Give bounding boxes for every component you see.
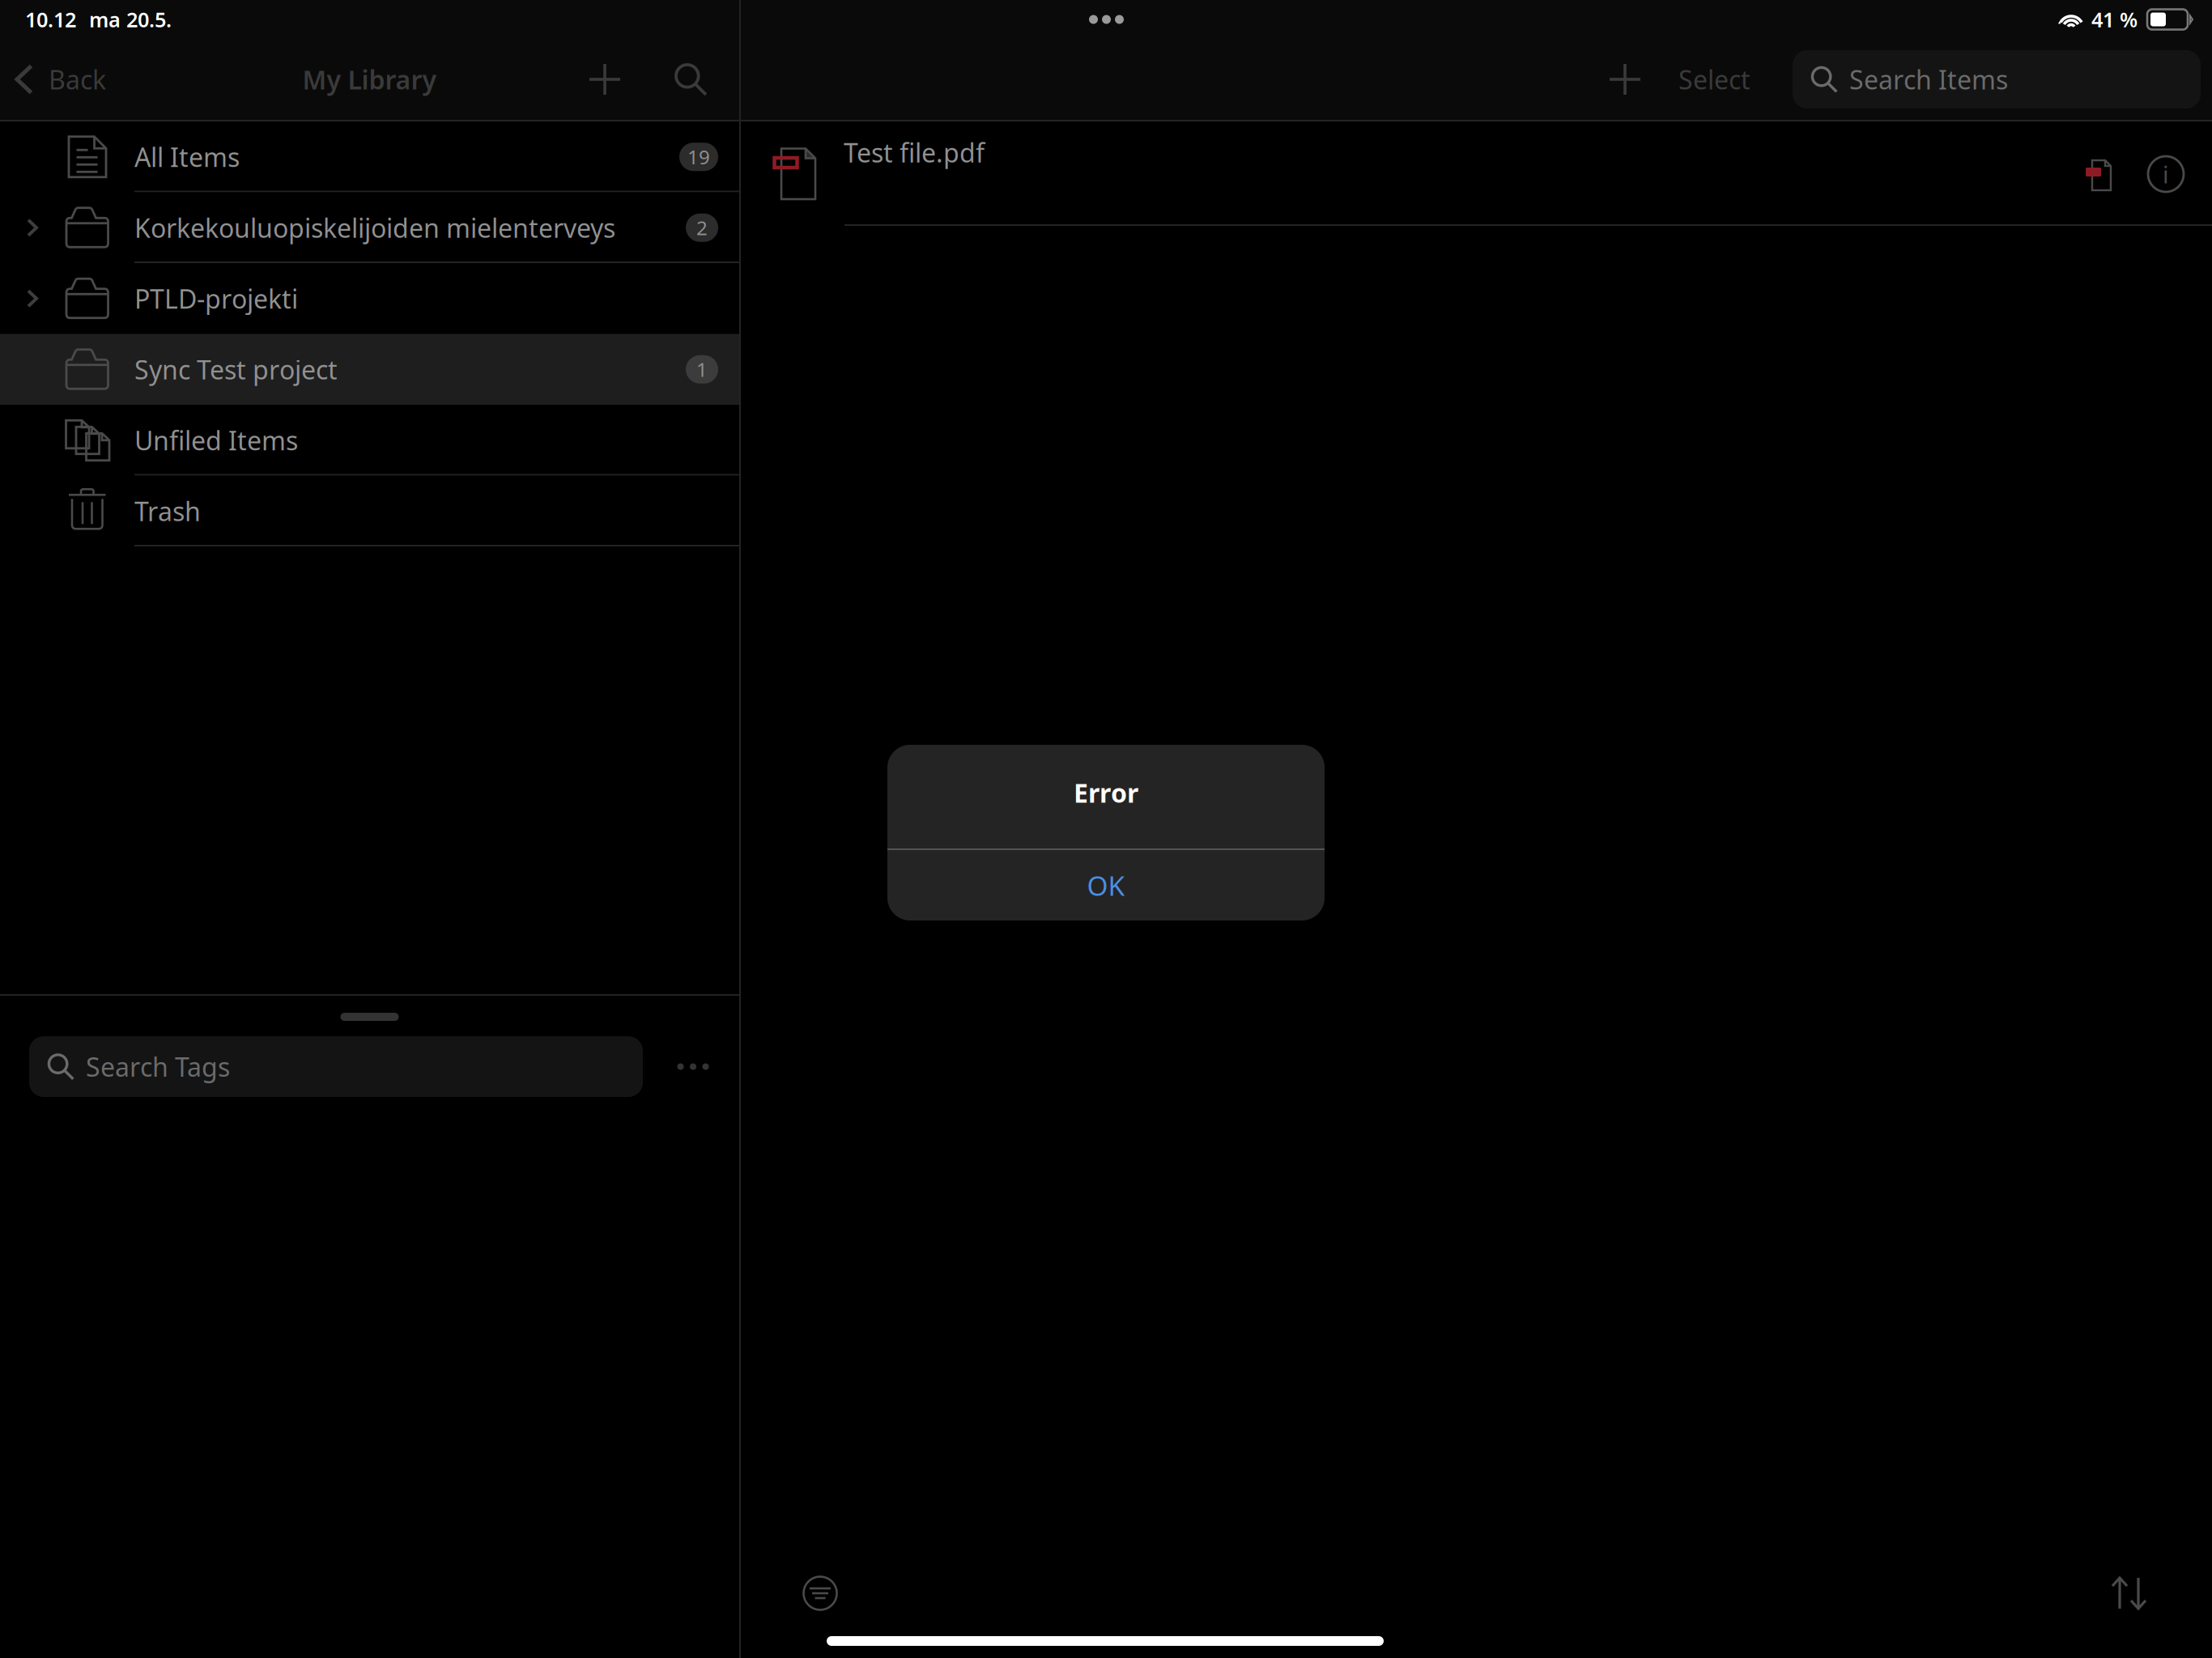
button[interactable]: Unfiled Items [0,405,739,476]
button[interactable]: Select [1672,48,1757,111]
button[interactable]: OK [887,850,1325,920]
staticText: Korkekouluopiskelijoiden mielenterveys [134,210,615,245]
staticText: 19 [687,144,710,170]
button[interactable]: Sync Test project [0,334,739,405]
button[interactable]: Add [574,48,636,111]
button[interactable]: All Items [0,121,739,192]
staticText: 2 [696,215,708,241]
staticText: Search Tags [86,1049,230,1084]
button[interactable]: Search [658,48,723,111]
staticText: 1 [696,356,708,382]
staticText: PTLD-projekti [134,281,298,316]
button[interactable]: Trash [0,476,739,546]
button[interactable]: PTLD-projekti [0,263,739,334]
staticText: Trash [134,494,201,528]
button[interactable]: Sort [2109,1575,2149,1612]
staticText: i [2163,158,2169,190]
button[interactable]: Search Items [1793,50,2201,108]
staticText: ma 20.5. [89,6,172,33]
staticText: 41 % [2091,6,2138,33]
staticText: All Items [134,140,240,174]
staticText: Select [1678,62,1750,97]
staticText: Back [49,62,106,97]
button[interactable]: Test file.pdf [741,121,2212,226]
staticText: Test file.pdf [844,135,985,170]
button[interactable]: Search Tags [29,1036,643,1097]
button[interactable]: Filter [802,1575,839,1612]
staticText: Search Items [1849,62,2008,97]
button[interactable]: More [661,1036,725,1097]
staticText: Sync Test project [134,352,338,387]
staticText: Error [1074,775,1138,810]
button[interactable]: Add item [1594,48,1656,111]
button[interactable]: Back [0,48,117,111]
staticText: My Library [302,62,437,97]
staticText: OK [1087,867,1125,903]
button[interactable]: Korkekouluopiskelijoiden mielenterveys [0,192,739,263]
staticText: 10.12 [25,6,76,33]
staticText: Unfiled Items [134,423,298,457]
